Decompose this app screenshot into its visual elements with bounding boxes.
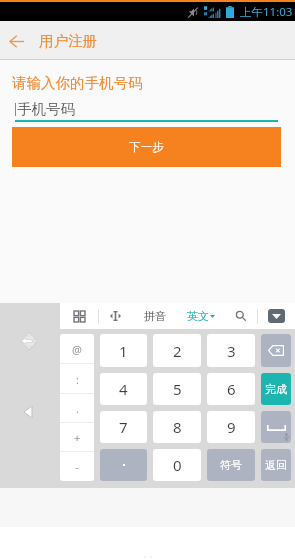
button[interactable]: 3 <box>207 334 255 367</box>
staticText: 4 <box>119 379 128 399</box>
staticText: 6 <box>227 379 236 399</box>
staticText: 手机号码 <box>17 100 75 118</box>
staticText: 8 <box>173 417 182 437</box>
button[interactable]: 符号 <box>207 449 255 481</box>
button[interactable]: 4 <box>100 373 147 405</box>
button[interactable]: 完成 <box>261 373 291 405</box>
button[interactable]: + <box>60 423 94 452</box>
button[interactable]: 2 <box>153 334 201 367</box>
staticText: 拼音 <box>144 309 166 323</box>
button[interactable]: 1 <box>100 334 147 367</box>
button[interactable]: : <box>60 364 94 394</box>
staticText: 下一步 <box>129 140 164 154</box>
button[interactable]: Hide keyboard <box>258 303 295 329</box>
staticText: 1 <box>119 341 128 361</box>
staticText: 5 <box>173 379 182 399</box>
button[interactable]: 返回 <box>261 449 291 481</box>
staticText: 2 <box>173 341 182 361</box>
button[interactable]: Keyboard layout <box>60 303 98 329</box>
button[interactable]: 9 <box>207 411 255 443</box>
button[interactable]: 8 <box>153 411 201 443</box>
staticText: 完成 <box>265 382 287 396</box>
button[interactable]: 下一步 <box>12 127 281 167</box>
staticText: 上午11:03 <box>240 4 293 20</box>
staticText: 用户注册 <box>39 32 97 50</box>
button[interactable]: . <box>60 394 94 423</box>
button[interactable]: 0 <box>153 449 201 481</box>
staticText: - <box>75 459 79 474</box>
staticText: 返回 <box>265 458 287 472</box>
button[interactable]: Back <box>5 30 27 52</box>
button[interactable]: Backspace <box>261 334 291 367</box>
button[interactable]: 拼音 <box>132 303 177 329</box>
staticText: 请输入你的手机号码 <box>12 74 143 92</box>
staticText: 符号 <box>220 458 242 472</box>
staticText: 英文 <box>187 309 209 323</box>
button[interactable]: @ <box>60 334 94 364</box>
staticText: + <box>74 430 81 445</box>
button[interactable]: Search <box>225 303 257 329</box>
staticText: 3 <box>227 341 236 361</box>
button[interactable] <box>100 449 147 481</box>
staticText: @ <box>72 342 82 357</box>
button[interactable]: 5 <box>153 373 201 405</box>
staticText: : <box>76 372 79 387</box>
button[interactable]: Move cursor <box>99 303 132 329</box>
button[interactable]: 7 <box>100 411 147 443</box>
button[interactable]: 6 <box>207 373 255 405</box>
button[interactable]: - <box>60 452 94 481</box>
staticText: 0 <box>173 455 182 475</box>
staticText: 9 <box>227 417 236 437</box>
button[interactable]: Space <box>261 411 291 443</box>
staticText: 7 <box>119 417 128 437</box>
button[interactable]: 英文 <box>177 303 225 329</box>
staticText: . <box>76 401 79 416</box>
